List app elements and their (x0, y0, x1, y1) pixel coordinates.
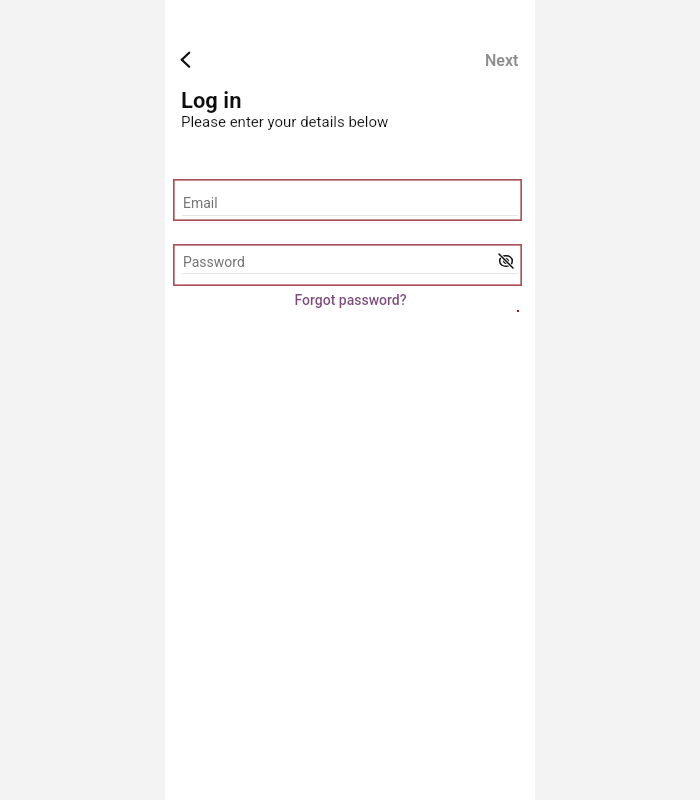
staticText: Please enter your details below (181, 113, 389, 131)
button[interactable] (173, 244, 522, 286)
button[interactable]: Back (168, 42, 204, 78)
staticText: Email (183, 195, 218, 211)
button[interactable] (173, 179, 522, 221)
button[interactable]: Next (469, 42, 535, 78)
staticText: Password (183, 254, 245, 270)
staticText: Forgot password? (294, 292, 407, 308)
staticText: Log in (181, 88, 242, 114)
button[interactable]: Forgot password? (288, 289, 413, 311)
staticText: Next (485, 51, 519, 70)
button[interactable]: Show password (494, 249, 518, 273)
